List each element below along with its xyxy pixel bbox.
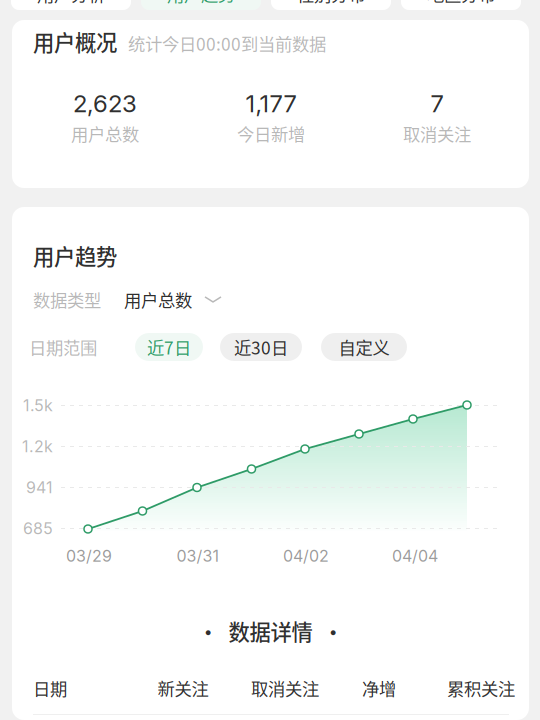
staticText: · 数据详情 · xyxy=(197,616,343,646)
button[interactable]: 性别分布 xyxy=(271,0,391,10)
button[interactable]: 近7日 xyxy=(135,333,203,361)
staticText: 1.5k xyxy=(23,396,53,415)
staticText: 统计今日00:00到当前数据 xyxy=(128,31,326,56)
staticText: 2,623 xyxy=(73,89,137,118)
staticText: 今日新增 xyxy=(237,121,305,146)
button[interactable]: 地区分布 xyxy=(401,0,521,10)
staticText: 04/02 xyxy=(283,546,329,566)
staticText: 04/04 xyxy=(392,546,438,566)
button[interactable]: 用户总数 xyxy=(124,287,222,312)
staticText: 地区分布 xyxy=(427,0,495,7)
staticText: 用户概况 xyxy=(33,26,117,57)
staticText: 自定义 xyxy=(338,334,389,359)
staticText: 日期 xyxy=(33,675,67,701)
staticText: 性别分布 xyxy=(297,0,365,7)
staticText: 941 xyxy=(26,478,53,497)
staticText: 新关注 xyxy=(157,675,208,701)
staticText: 日期范围 xyxy=(29,334,97,359)
button[interactable]: 自定义 xyxy=(321,333,407,361)
staticText: 7 xyxy=(430,89,443,118)
staticText: 用户趋势 xyxy=(167,0,235,7)
staticText: 用户趋势 xyxy=(33,240,117,271)
button[interactable]: 近30日 xyxy=(220,333,302,361)
staticText: 数据类型 xyxy=(33,287,101,312)
staticText: 近7日 xyxy=(147,334,191,359)
button[interactable]: 用户分析 xyxy=(11,0,131,10)
staticText: 取消关注 xyxy=(403,121,471,146)
staticText: 近30日 xyxy=(234,334,288,359)
staticText: 用户总数 xyxy=(71,121,139,146)
staticText: 用户分析 xyxy=(37,0,105,7)
staticText: 净增 xyxy=(362,675,396,701)
staticText: 03/29 xyxy=(66,546,112,566)
staticText: 03/31 xyxy=(176,546,219,566)
staticText: 1.2k xyxy=(22,437,53,456)
staticText: 累积关注 xyxy=(447,675,515,701)
staticText: 取消关注 xyxy=(251,675,319,701)
button[interactable]: 用户趋势 xyxy=(141,0,261,10)
staticText: 685 xyxy=(23,519,53,538)
staticText: 用户总数 xyxy=(124,287,192,312)
staticText: 1,177 xyxy=(245,89,296,118)
